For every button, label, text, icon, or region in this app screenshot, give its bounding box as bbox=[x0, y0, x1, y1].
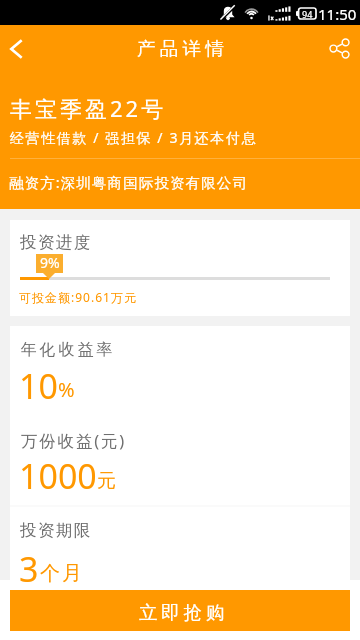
staticText: 融资方:深圳粤商国际投资有限公司 bbox=[9, 172, 248, 192]
button[interactable]: Back bbox=[0, 25, 46, 72]
staticText: % bbox=[58, 376, 75, 403]
staticText: 产品详情 bbox=[137, 37, 229, 60]
staticText: 丰宝季盈22号 bbox=[10, 93, 167, 123]
staticText: 可投金额:90.61万元 bbox=[19, 289, 137, 305]
staticText: 经营性借款 / 强担保 / 3月还本付息 bbox=[10, 128, 257, 147]
staticText: 立即抢购 bbox=[139, 601, 229, 624]
staticText: 投资期限 bbox=[20, 520, 92, 541]
staticText: 个月 bbox=[39, 561, 83, 586]
staticText: 1000 bbox=[19, 453, 97, 499]
staticText: 11:50 bbox=[318, 4, 357, 24]
staticText: 万份收益(元) bbox=[21, 429, 126, 452]
button[interactable]: 立即抢购 bbox=[10, 590, 350, 631]
staticText: 年化收益率 bbox=[19, 340, 114, 360]
button[interactable]: Share bbox=[320, 25, 360, 72]
staticText: 9% bbox=[40, 253, 60, 272]
staticText: 10 bbox=[19, 363, 58, 409]
staticText: 投资进度 bbox=[20, 232, 92, 253]
staticText: 94 bbox=[302, 8, 313, 19]
staticText: 元 bbox=[97, 469, 116, 493]
staticText: 3 bbox=[19, 546, 39, 592]
